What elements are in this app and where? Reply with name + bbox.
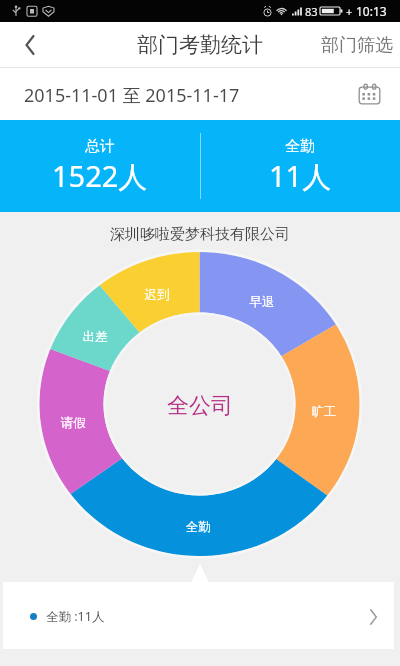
staticText: 深圳哆啦爱梦科技有限公司 bbox=[0, 225, 400, 244]
button[interactable]: 2015-11-01 至 2015-11-17 bbox=[0, 68, 400, 120]
staticText: 全公司 bbox=[155, 392, 245, 420]
staticText: 迟到 bbox=[132, 287, 182, 303]
staticText: 部门考勤统计 bbox=[137, 32, 263, 58]
button[interactable]: 全勤 :11人 bbox=[3, 582, 394, 649]
staticText: 2015-11-01 至 2015-11-17 bbox=[24, 83, 240, 108]
staticText: 早退 bbox=[237, 294, 287, 310]
staticText: 出差 bbox=[70, 329, 120, 345]
staticText: 旷工 bbox=[299, 404, 349, 420]
button[interactable]: 部门筛选 bbox=[313, 22, 400, 68]
staticText: 部门筛选 bbox=[321, 34, 393, 57]
staticText: 全勤 bbox=[285, 137, 315, 156]
staticText: 总计 bbox=[85, 137, 115, 156]
staticText: 全勤 bbox=[173, 519, 223, 535]
staticText: 请假 bbox=[48, 415, 98, 431]
staticText: 10:13 bbox=[356, 3, 387, 19]
staticText: + bbox=[346, 4, 353, 19]
button[interactable]: 全勤 bbox=[200, 120, 400, 212]
staticText: 全勤 :11人 bbox=[46, 608, 105, 625]
button[interactable]: 总计 bbox=[0, 120, 200, 212]
staticText: 83 bbox=[305, 4, 318, 19]
button[interactable]: Back bbox=[0, 22, 59, 68]
button[interactable]: Pick date range bbox=[354, 79, 384, 109]
staticText: 1522人 bbox=[52, 156, 148, 196]
staticText: 11人 bbox=[269, 156, 332, 196]
